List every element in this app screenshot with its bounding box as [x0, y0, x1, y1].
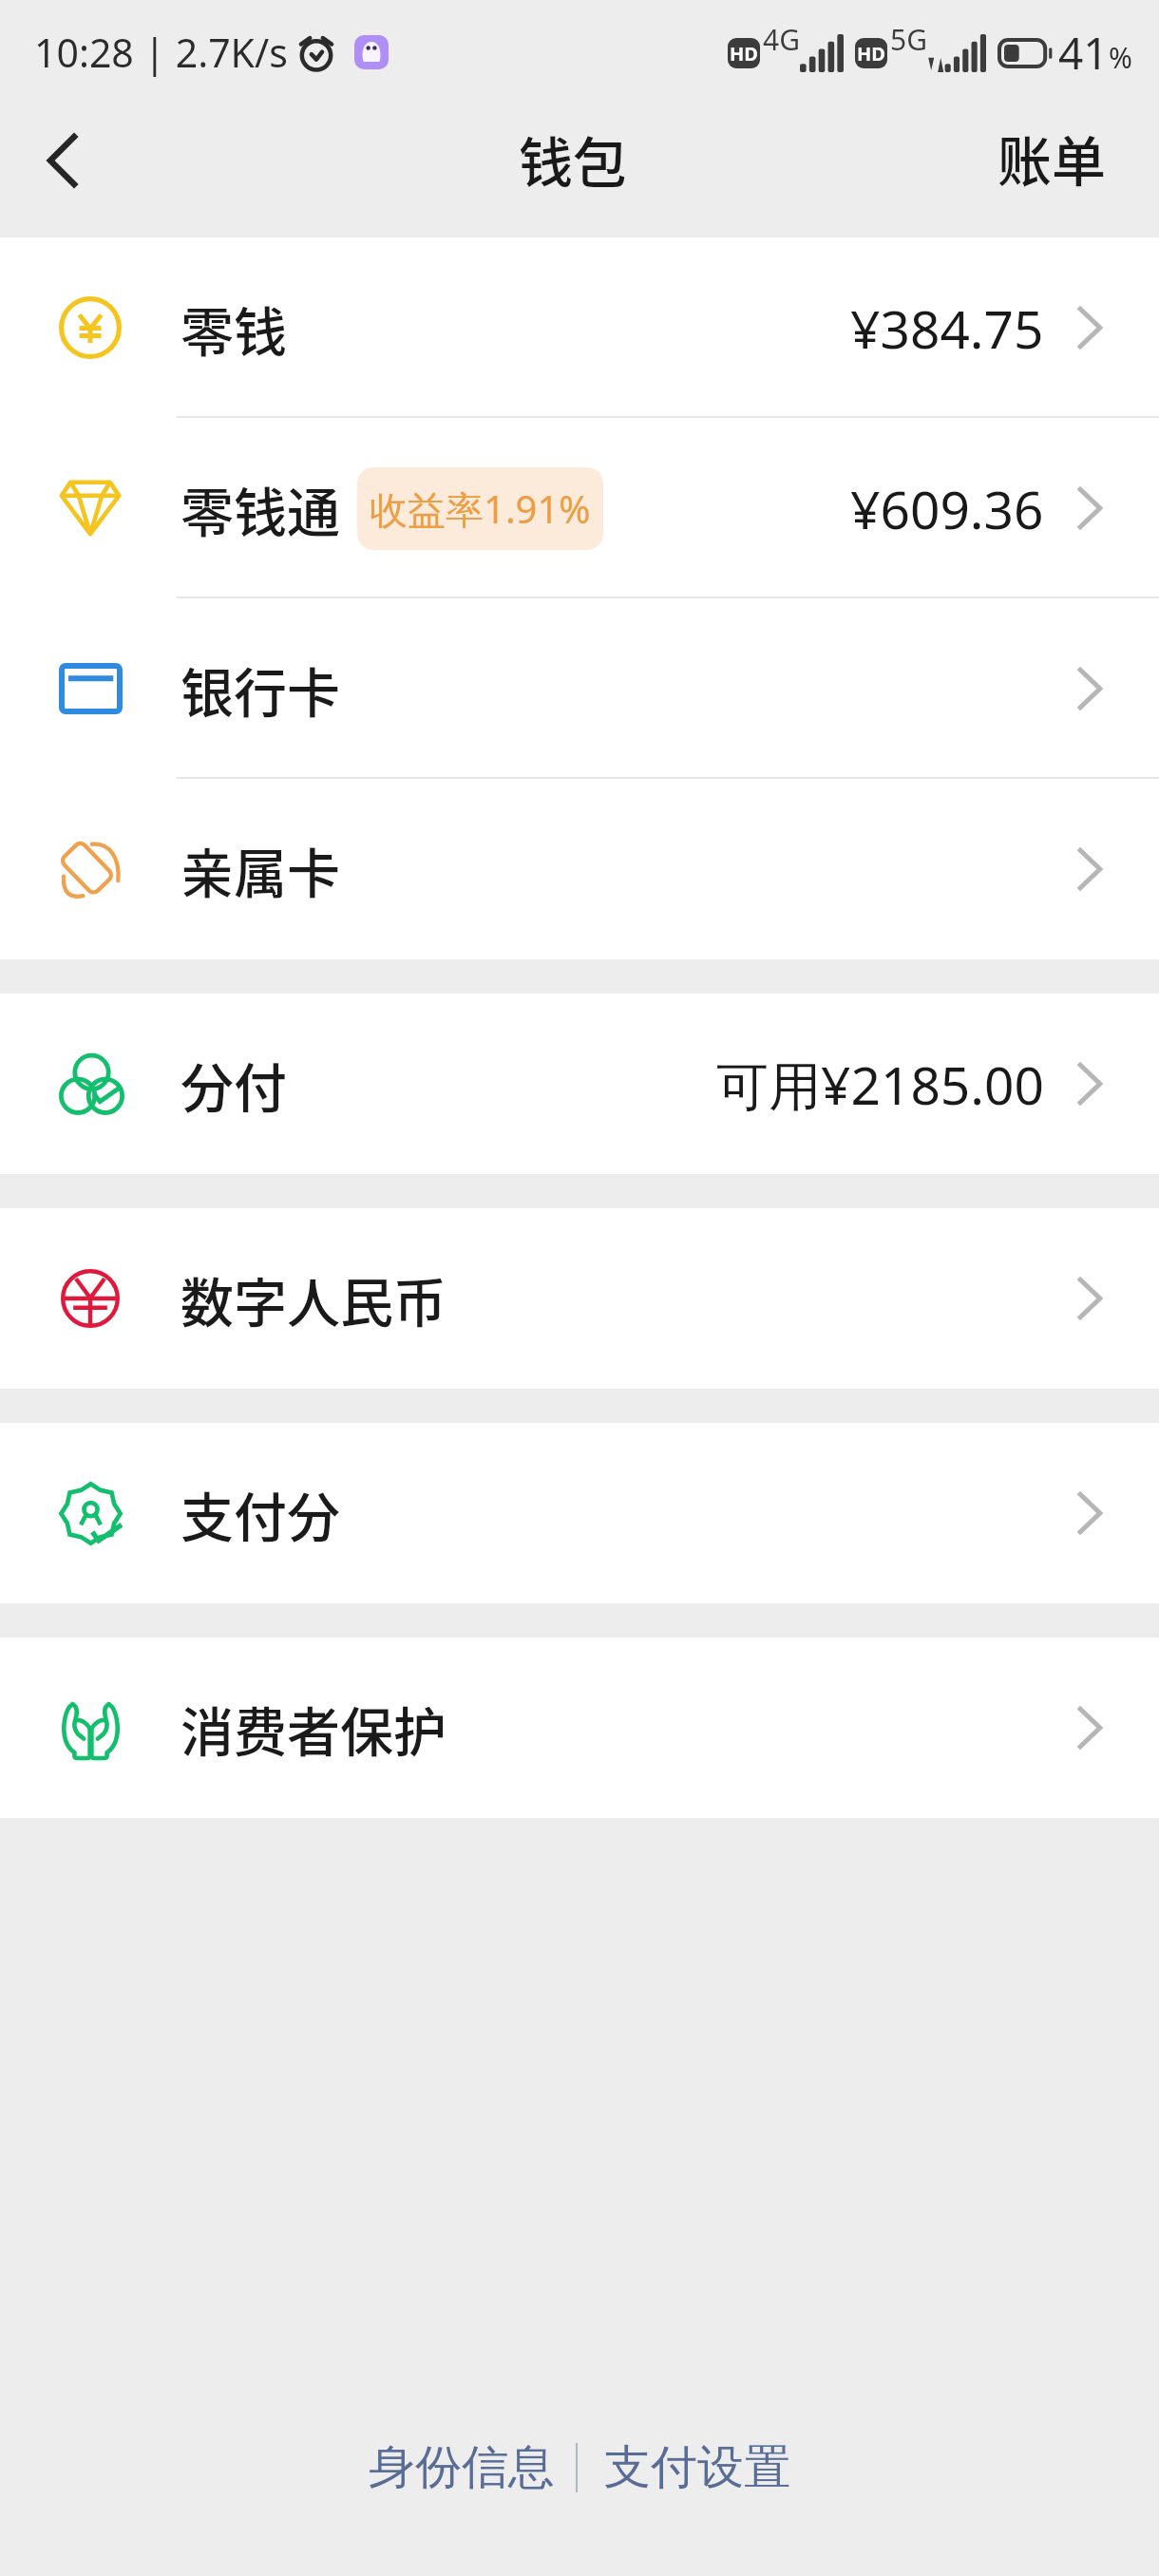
staticText: 分付	[180, 1046, 287, 1123]
staticText: 收益率1.91%	[370, 483, 591, 535]
staticText: 账单	[997, 119, 1106, 198]
staticText: ¥384.75	[850, 293, 1044, 364]
staticText: 亲属卡	[180, 831, 340, 908]
button[interactable]: 银行卡	[0, 598, 1159, 779]
staticText: 消费者保护	[180, 1690, 446, 1767]
staticText: 可用¥2185.00	[716, 1049, 1044, 1120]
staticText: 支付设置	[604, 2438, 790, 2497]
button[interactable]: 零钱	[0, 237, 1159, 418]
staticText: 数字人民币	[180, 1260, 446, 1337]
button[interactable]: 支付分	[0, 1423, 1159, 1603]
staticText: 4G	[763, 20, 800, 59]
staticText: 10:28 | 2.7K/s	[34, 26, 288, 79]
staticText: 钱包	[519, 120, 627, 199]
button[interactable]: 分付	[0, 994, 1159, 1174]
button[interactable]: 消费者保护	[0, 1638, 1159, 1818]
button[interactable]: 支付设置	[578, 2423, 813, 2512]
button[interactable]: 账单	[969, 100, 1159, 217]
button[interactable]: 亲属卡	[0, 779, 1159, 959]
staticText: 身份信息	[369, 2438, 555, 2497]
staticText: 零钱	[180, 290, 287, 367]
button[interactable]: 数字人民币	[0, 1208, 1159, 1389]
staticText: HD	[730, 41, 758, 66]
staticText: 41	[1058, 23, 1109, 83]
button[interactable]: Back	[19, 118, 104, 203]
staticText: ¥609.36	[850, 473, 1044, 544]
staticText: 5G	[890, 20, 927, 59]
staticText: 零钱通	[180, 470, 340, 547]
staticText: 银行卡	[180, 651, 340, 728]
staticText: %	[1109, 38, 1132, 77]
staticText: HD	[857, 41, 885, 66]
staticText: 支付分	[180, 1475, 340, 1552]
button[interactable]: 身份信息	[346, 2423, 576, 2512]
button[interactable]: 零钱通	[0, 418, 1159, 598]
